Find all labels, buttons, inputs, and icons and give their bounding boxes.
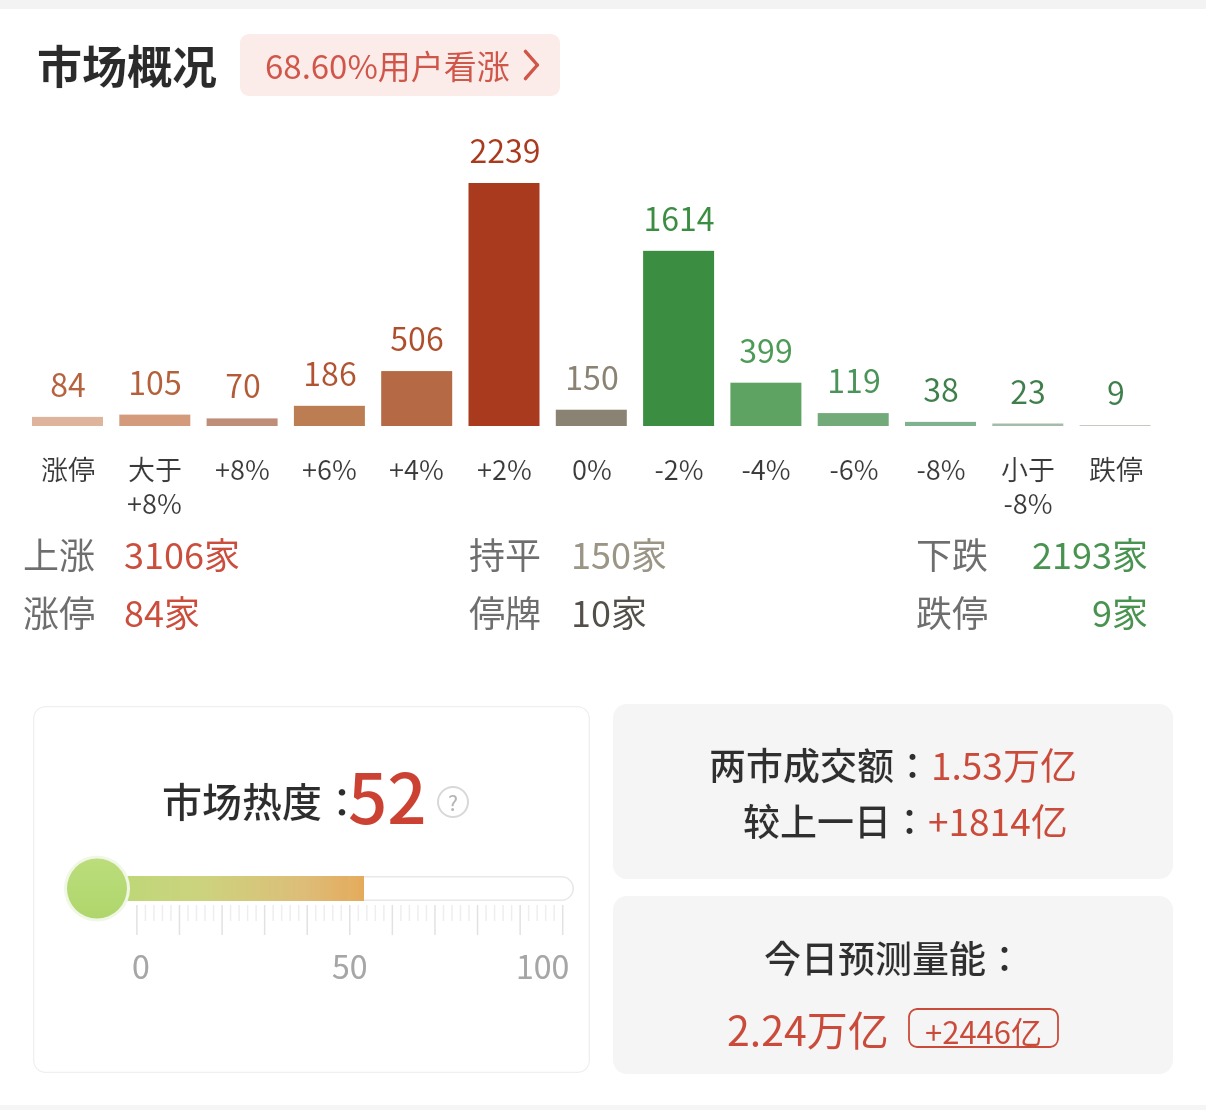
staticText: 105 <box>128 358 182 404</box>
button[interactable]: 今日预测量能： <box>613 896 1173 1074</box>
staticText: 9家 <box>1092 585 1148 637</box>
staticText: 150家 <box>571 527 667 579</box>
staticText: 23 <box>1010 367 1046 413</box>
staticText: +4% <box>389 449 444 488</box>
staticText: 较上一日： <box>743 793 928 847</box>
staticText: 84家 <box>124 585 200 637</box>
staticText: 大于 <box>128 449 182 488</box>
staticText: 小于 <box>1001 449 1055 488</box>
staticText: ? <box>448 787 458 817</box>
staticText: +2446亿 <box>925 1008 1043 1048</box>
button[interactable]: 68.60%用户看涨 <box>240 34 560 96</box>
staticText: 上涨 <box>23 527 96 579</box>
button[interactable]: 两市成交额： <box>613 704 1173 879</box>
staticText: 跌停 <box>1089 449 1143 488</box>
staticText: 市场概况 <box>37 32 218 97</box>
staticText: 100 <box>516 942 570 988</box>
button[interactable]: 帮助 <box>437 786 469 818</box>
button[interactable]: 市场热度： <box>33 706 590 1073</box>
staticText: 68.60%用户看涨 <box>265 41 510 89</box>
staticText: 涨停 <box>23 585 96 637</box>
staticText: 两市成交额： <box>709 737 931 791</box>
staticText: -8% <box>916 449 966 488</box>
staticText: +1814亿 <box>928 793 1068 847</box>
staticText: 399 <box>739 326 793 372</box>
staticText: 0% <box>572 449 612 488</box>
staticText: 506 <box>390 314 444 360</box>
staticText: 10家 <box>571 585 647 637</box>
staticText: +8% <box>215 449 270 488</box>
staticText: 市场热度： <box>162 771 362 829</box>
staticText: 9 <box>1107 368 1125 414</box>
staticText: 今日预测量能： <box>764 930 1023 984</box>
staticText: +2% <box>477 449 532 488</box>
staticText: 下跌 <box>916 527 989 579</box>
staticText: 2239 <box>469 126 541 172</box>
staticText: 0 <box>132 942 150 988</box>
staticText: 跌停 <box>916 585 989 637</box>
staticText: 52 <box>348 744 427 844</box>
staticText: 2193家 <box>1032 527 1148 579</box>
staticText: -4% <box>741 449 791 488</box>
staticText: 持平 <box>469 527 542 579</box>
staticText: 停牌 <box>469 585 542 637</box>
staticText: 38 <box>923 365 959 411</box>
staticText: -2% <box>654 449 704 488</box>
staticText: +8% <box>127 483 182 522</box>
staticText: 3106家 <box>124 527 240 579</box>
staticText: -8% <box>1003 483 1053 522</box>
staticText: 50 <box>332 942 368 988</box>
staticText: 2.24万亿 <box>727 998 889 1057</box>
staticText: 119 <box>827 356 881 402</box>
staticText: -6% <box>829 449 879 488</box>
staticText: 70 <box>225 361 261 407</box>
staticText: 1.53万亿 <box>931 737 1077 791</box>
staticText: 1614 <box>643 194 715 240</box>
staticText: 涨停 <box>41 449 95 488</box>
staticText: 150 <box>565 353 619 399</box>
staticText: 84 <box>50 360 86 406</box>
staticText: 186 <box>303 349 357 395</box>
staticText: +6% <box>302 449 357 488</box>
other: 查看更多 <box>521 48 541 82</box>
